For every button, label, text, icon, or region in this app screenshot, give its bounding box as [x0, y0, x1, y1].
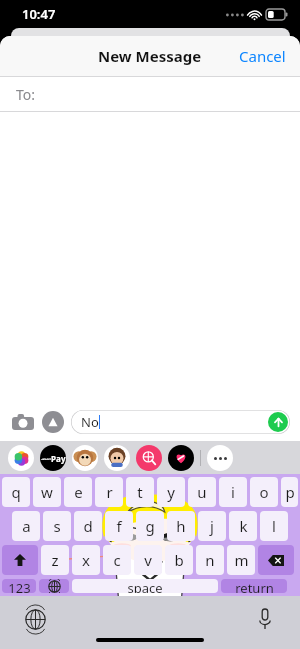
button[interactable]: Dictation [252, 606, 278, 632]
staticText: f [116, 516, 122, 536]
staticText: d [83, 516, 93, 536]
staticText: a [22, 516, 31, 536]
button[interactable]: o [250, 477, 278, 507]
button[interactable]: y [157, 477, 185, 507]
button[interactable]: z [41, 545, 69, 575]
button[interactable]: Backspace [258, 545, 294, 575]
button[interactable]: Camera [10, 409, 36, 435]
staticText: New Message [98, 46, 202, 66]
staticText: b [174, 550, 184, 570]
button[interactable]: s [43, 511, 71, 541]
staticText: z [51, 550, 59, 570]
staticText: n [205, 550, 215, 570]
button[interactable]: h [167, 511, 195, 541]
staticText: q [11, 482, 21, 502]
button[interactable]: u [188, 477, 216, 507]
staticText: 10:47 [22, 5, 56, 23]
button[interactable]: q [2, 477, 30, 507]
staticText: p [285, 482, 295, 502]
button[interactable] [104, 445, 130, 471]
button[interactable]: Change keyboard [39, 579, 69, 593]
staticText: Cancel [239, 46, 286, 66]
button[interactable]: n [196, 545, 224, 575]
button[interactable]: No [71, 410, 290, 434]
staticText: l [272, 516, 276, 536]
button[interactable] [168, 445, 194, 471]
button[interactable] [207, 445, 233, 471]
staticText: 123 [8, 579, 31, 593]
button[interactable]: r [95, 477, 123, 507]
button[interactable]: p [281, 477, 298, 507]
staticText: y [167, 482, 175, 502]
button[interactable]: l [260, 511, 288, 541]
button[interactable]: a [12, 511, 40, 541]
button[interactable]: Shift [2, 545, 38, 575]
button[interactable]: f [105, 511, 133, 541]
button[interactable]: j [198, 511, 226, 541]
button[interactable]: w [33, 477, 61, 507]
staticText: w [41, 482, 53, 502]
button[interactable]: return [221, 579, 287, 593]
button[interactable]: Pay [40, 445, 66, 471]
staticText: s [53, 516, 61, 536]
staticText: c [113, 550, 121, 570]
staticText: h [176, 516, 186, 536]
button[interactable]: 123 [2, 579, 36, 593]
button[interactable]: space [72, 579, 218, 593]
button[interactable]: Cancel [233, 41, 292, 71]
staticText: No [81, 413, 99, 431]
button[interactable] [8, 445, 34, 471]
button[interactable]: App Store [42, 411, 64, 433]
staticText: return [235, 579, 274, 593]
staticText: m [234, 550, 249, 570]
staticText: i [231, 482, 235, 502]
staticText: e [74, 482, 83, 502]
button[interactable]: k [229, 511, 257, 541]
button[interactable]: Send [268, 412, 288, 432]
button[interactable]: x [72, 545, 100, 575]
staticText: Pay [41, 453, 66, 464]
button[interactable]: m [227, 545, 255, 575]
staticText: u [197, 482, 207, 502]
button[interactable]: i [219, 477, 247, 507]
staticText: To: [16, 85, 36, 104]
button[interactable]: Globe [22, 606, 48, 632]
button[interactable] [72, 445, 98, 471]
button[interactable]: b [165, 545, 193, 575]
staticText: o [259, 482, 269, 502]
staticText: j [210, 516, 214, 536]
staticText: g [145, 516, 155, 536]
button[interactable]: t [126, 477, 154, 507]
staticText: r [106, 482, 113, 502]
staticText: t [137, 482, 143, 502]
staticText: space [127, 579, 163, 593]
staticText: k [239, 516, 248, 536]
button[interactable]: c [103, 545, 131, 575]
button[interactable] [136, 445, 162, 471]
staticText: x [82, 550, 90, 570]
staticText: v [144, 550, 152, 570]
button[interactable]: v [134, 545, 162, 575]
button[interactable]: e [64, 477, 92, 507]
button[interactable]: To: [0, 77, 300, 111]
button[interactable]: d [74, 511, 102, 541]
button[interactable]: g [136, 511, 164, 541]
